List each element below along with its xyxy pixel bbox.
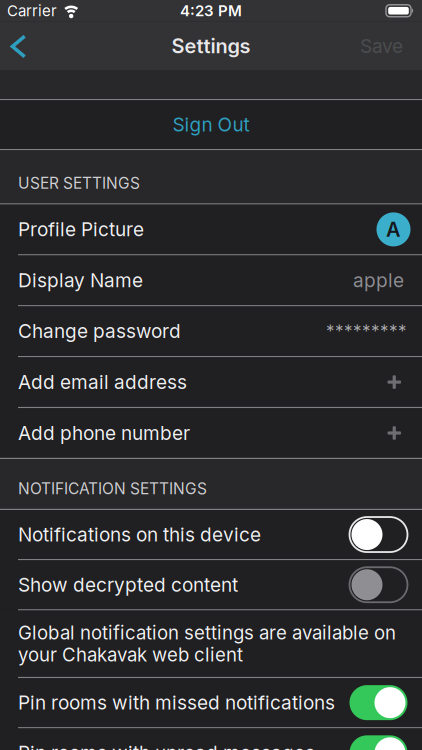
button[interactable]: Change password	[0, 306, 422, 356]
staticText: Pin rooms with unread messages	[18, 742, 315, 750]
button[interactable]: Profile Picture	[0, 205, 422, 254]
staticText: Settings	[171, 34, 250, 58]
staticText: Add phone number	[18, 422, 190, 444]
staticText: Sign Out	[172, 113, 249, 136]
staticText: NOTIFICATION SETTINGS	[18, 480, 207, 498]
staticText: apple	[353, 269, 404, 291]
staticText: Change password	[18, 320, 181, 342]
staticText: Save	[360, 35, 403, 57]
button[interactable]: Add email address	[0, 357, 422, 407]
button[interactable]: Pin rooms with unread messages	[349, 735, 422, 750]
staticText: Add email address	[18, 371, 187, 393]
staticText: USER SETTINGS	[18, 174, 140, 192]
staticText: Show decrypted content	[18, 574, 238, 596]
button[interactable]: Add phone number	[0, 408, 422, 458]
staticText: 4:23 PM	[180, 2, 242, 19]
staticText: Pin rooms with missed notifications	[18, 691, 335, 714]
staticText: A	[386, 218, 401, 241]
staticText: Notifications on this device	[18, 523, 261, 546]
button[interactable]: Notifications on this device	[349, 517, 422, 552]
staticText: Carrier	[7, 2, 57, 19]
staticText: Profile Picture	[18, 218, 144, 241]
button[interactable]: Show decrypted content	[349, 567, 422, 602]
button[interactable]: Save	[360, 35, 422, 57]
staticText: Display Name	[18, 269, 143, 291]
staticText: *********	[326, 321, 407, 341]
button[interactable]: Sign Out	[0, 100, 422, 149]
button[interactable]: Pin rooms with missed notifications	[349, 685, 422, 720]
button[interactable]: Display Name	[0, 255, 422, 305]
button[interactable]: Back	[0, 33, 27, 59]
staticText: Global notification settings are availab…	[18, 622, 396, 666]
